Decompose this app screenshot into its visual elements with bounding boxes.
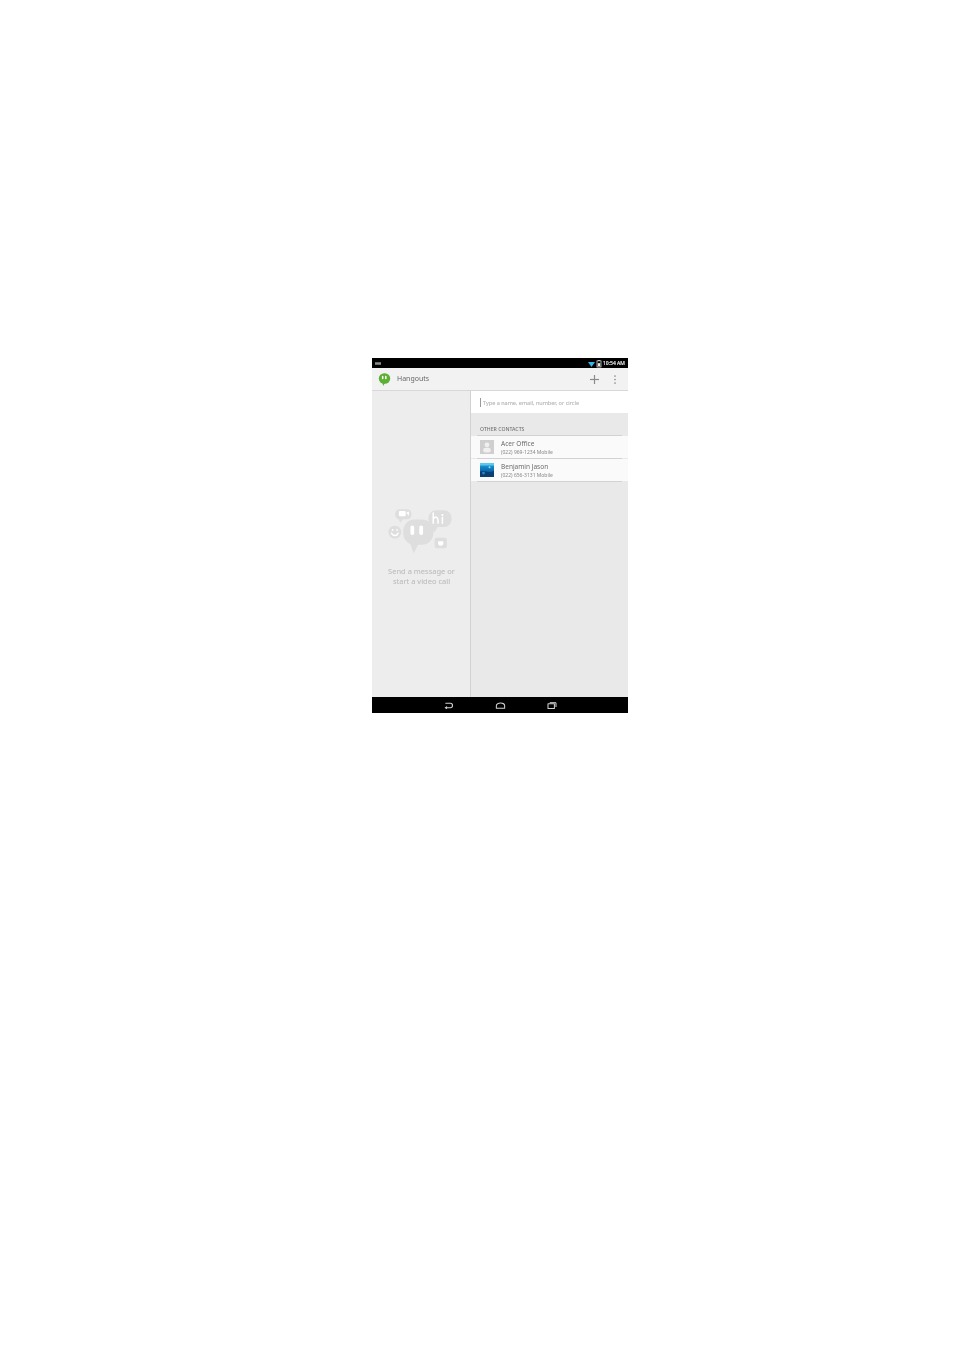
staticText: 10:54 AM xyxy=(603,360,625,367)
staticText: Acer Office xyxy=(501,439,535,448)
button[interactable]: More options xyxy=(605,369,625,389)
button[interactable]: Benjamin Jason xyxy=(471,459,628,481)
button[interactable]: Acer Office xyxy=(471,436,628,458)
button[interactable]: New conversation xyxy=(583,368,605,390)
button[interactable]: Type a name, email, number, or circle xyxy=(471,391,628,413)
staticText: (022) 969-1234 Mobile xyxy=(501,449,553,456)
staticText: Send a message or start a video call xyxy=(388,566,455,586)
staticText: OTHER CONTACTS xyxy=(480,425,525,432)
staticText: Benjamin Jason xyxy=(501,462,549,471)
staticText: Hangouts xyxy=(397,374,430,384)
button[interactable]: Hangouts xyxy=(378,373,391,386)
button[interactable]: Back xyxy=(431,697,465,713)
button[interactable]: Home xyxy=(483,697,517,713)
button[interactable]: Recent apps xyxy=(535,697,569,713)
staticText: (022) 656-3131 Mobile xyxy=(501,472,553,479)
staticText: Type a name, email, number, or circle xyxy=(483,399,580,406)
